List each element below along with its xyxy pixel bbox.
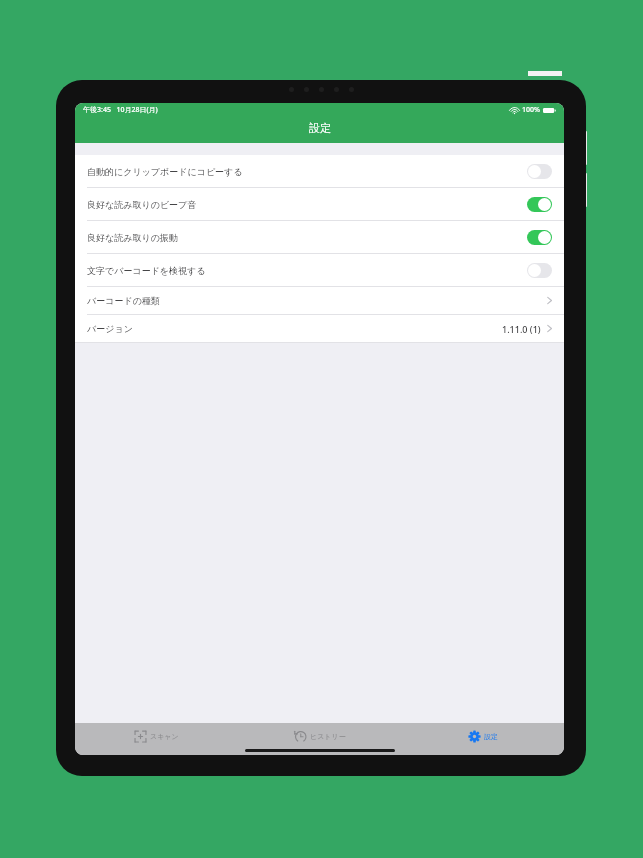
button[interactable]: On [527, 230, 552, 245]
staticText: 1.11.0 (1) [502, 323, 541, 335]
button[interactable]: 設定 [401, 723, 564, 755]
staticText: バーコードの種類 [87, 295, 160, 306]
staticText: 100% [522, 105, 540, 115]
staticText: 午後3:45 10月28日(月) [83, 105, 158, 115]
staticText: 良好な読み取りのビープ音 [87, 199, 197, 210]
button[interactable]: 文字でバーコードを検視する [75, 254, 564, 286]
button[interactable]: 良好な読み取りのビープ音 [75, 188, 564, 220]
button[interactable]: On [527, 197, 552, 212]
staticText: 設定 [309, 121, 331, 135]
staticText: 良好な読み取りの振動 [87, 232, 178, 243]
staticText: 自動的にクリップボードにコピーする [87, 166, 243, 177]
button[interactable]: Off [527, 263, 552, 278]
staticText: スキャン [150, 732, 179, 741]
button[interactable]: 自動的にクリップボードにコピーする [75, 155, 564, 187]
button[interactable]: バーコードの種類 [75, 287, 564, 314]
staticText: ヒストリー [310, 732, 346, 741]
button[interactable]: Off [527, 164, 552, 179]
staticText: 文字でバーコードを検視する [87, 265, 206, 276]
button[interactable]: ヒストリー [238, 723, 401, 755]
button[interactable]: バージョン [75, 315, 564, 342]
button[interactable]: 良好な読み取りの振動 [75, 221, 564, 253]
staticText: 設定 [484, 732, 498, 741]
staticText: バージョン [87, 323, 133, 334]
button[interactable]: スキャン [75, 723, 238, 755]
